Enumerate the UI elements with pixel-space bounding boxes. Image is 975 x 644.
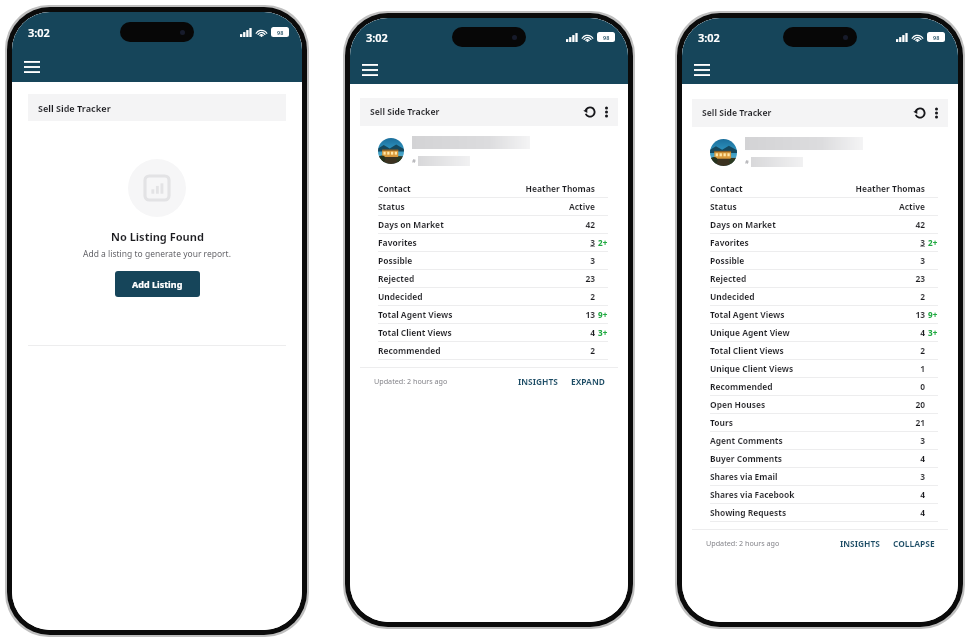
staticText: Rejected: [378, 273, 415, 284]
staticText: 3: [920, 255, 925, 266]
staticText: 3+: [928, 327, 938, 338]
button[interactable]: Open navigation menu: [20, 57, 44, 77]
staticText: #: [745, 158, 749, 166]
button[interactable]: Sell Side Tracker: [370, 106, 440, 118]
staticText: Add a listing to generate your report.: [83, 248, 231, 260]
staticText: Total Agent Views: [710, 309, 785, 320]
button[interactable]: INSIGHTS: [837, 535, 883, 552]
button[interactable]: Refresh: [912, 105, 928, 121]
button[interactable]: Favorites: [692, 234, 948, 251]
button[interactable]: Favorites: [360, 234, 618, 251]
button[interactable]: Refresh: [582, 104, 598, 120]
staticText: Active: [568, 201, 595, 212]
staticText: Updated: 2 hours ago: [374, 376, 448, 386]
staticText: Open Houses: [710, 399, 766, 410]
staticText: Contact: [378, 183, 411, 194]
staticText: COLLAPSE: [893, 538, 935, 549]
button[interactable]: Open navigation menu: [358, 60, 382, 80]
button[interactable]: Open Houses: [692, 396, 948, 413]
staticText: 13: [585, 309, 595, 320]
button[interactable]: Rejected: [360, 270, 618, 287]
staticText: 4: [590, 327, 595, 338]
staticText: Favorites: [378, 237, 417, 248]
button[interactable]: Showing Requests: [692, 504, 948, 521]
staticText: EXPAND: [571, 376, 605, 387]
button[interactable]: Unique Client Views: [692, 360, 948, 377]
staticText: Recommended: [710, 381, 773, 392]
button[interactable]: Status: [360, 198, 618, 215]
staticText: 13: [915, 309, 925, 320]
staticText: 23: [585, 273, 595, 284]
staticText: Sell Side Tracker: [38, 102, 111, 114]
button[interactable]: Contact: [360, 180, 618, 197]
button[interactable]: EXPAND: [568, 373, 608, 390]
staticText: 2: [590, 291, 595, 302]
staticText: Shares via Email: [710, 471, 778, 482]
button[interactable]: Total Agent Views: [692, 306, 948, 323]
staticText: Add Listing: [132, 278, 183, 290]
button[interactable]: Status: [692, 198, 948, 215]
staticText: 98: [933, 34, 940, 41]
staticText: Status: [710, 201, 737, 212]
button[interactable]: Shares via Facebook: [692, 486, 948, 503]
button[interactable]: Days on Market: [692, 216, 948, 233]
button[interactable]: Undecided: [360, 288, 618, 305]
button[interactable]: Shares via Email: [692, 468, 948, 485]
staticText: 2: [920, 345, 925, 356]
button[interactable]: COLLAPSE: [890, 535, 938, 552]
button[interactable]: Rejected: [692, 270, 948, 287]
staticText: #: [412, 157, 416, 165]
staticText: Undecided: [378, 291, 423, 302]
button[interactable]: Total Agent Views: [360, 306, 618, 323]
staticText: Total Client Views: [378, 327, 452, 338]
staticText: Heather Thomas: [855, 183, 925, 194]
staticText: Total Agent Views: [378, 309, 453, 320]
button[interactable]: Contact: [692, 180, 948, 197]
staticText: Total Client Views: [710, 345, 784, 356]
button[interactable]: Total Client Views: [692, 342, 948, 359]
button[interactable]: Recommended: [692, 378, 948, 395]
staticText: Possible: [378, 255, 413, 266]
staticText: 9+: [598, 309, 608, 320]
staticText: Favorites: [710, 237, 749, 248]
staticText: No Listing Found: [111, 229, 204, 244]
staticText: Showing Requests: [710, 507, 787, 518]
button[interactable]: Open navigation menu: [690, 60, 714, 80]
staticText: 0: [920, 381, 925, 392]
button[interactable]: Buyer Comments: [692, 450, 948, 467]
staticText: Active: [898, 201, 925, 212]
staticText: Rejected: [710, 273, 747, 284]
button[interactable]: Total Client Views: [360, 324, 618, 341]
staticText: INSIGHTS: [840, 538, 880, 549]
staticText: 3: [590, 237, 595, 248]
button[interactable]: Add Listing: [115, 271, 200, 297]
button[interactable]: Sell Side Tracker: [702, 107, 772, 119]
button[interactable]: Days on Market: [360, 216, 618, 233]
button[interactable]: Tours: [692, 414, 948, 431]
button[interactable]: Sell Side Tracker: [28, 94, 286, 121]
button[interactable]: Unique Agent View: [692, 324, 948, 341]
staticText: 9+: [928, 309, 938, 320]
button[interactable]: Recommended: [360, 342, 618, 359]
staticText: 2: [590, 345, 595, 356]
staticText: 4: [920, 489, 925, 500]
button[interactable]: Possible: [360, 252, 618, 269]
staticText: Contact: [710, 183, 743, 194]
button[interactable]: Undecided: [692, 288, 948, 305]
staticText: 3:02: [698, 30, 720, 45]
button[interactable]: INSIGHTS: [515, 373, 561, 390]
staticText: Possible: [710, 255, 745, 266]
button[interactable]: More options: [933, 105, 940, 121]
staticText: Updated: 2 hours ago: [706, 538, 780, 548]
button[interactable]: Agent Comments: [692, 432, 948, 449]
staticText: 4: [920, 507, 925, 518]
staticText: INSIGHTS: [518, 376, 558, 387]
staticText: Agent Comments: [710, 435, 783, 446]
staticText: Days on Market: [378, 219, 444, 230]
staticText: 3: [920, 435, 925, 446]
button[interactable]: More options: [603, 104, 610, 120]
staticText: 21: [915, 417, 925, 428]
button[interactable]: Possible: [692, 252, 948, 269]
staticText: 42: [585, 219, 595, 230]
staticText: Undecided: [710, 291, 755, 302]
